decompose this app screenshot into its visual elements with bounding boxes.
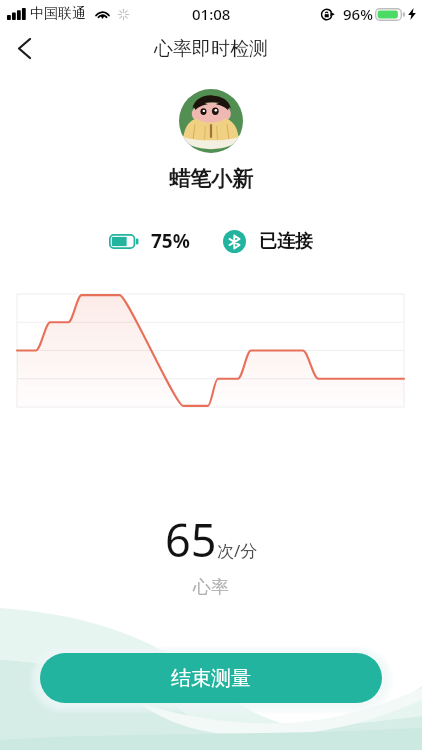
staticText: 蜡笔小新 [0, 166, 422, 192]
staticText: 65 [165, 509, 217, 570]
staticText: 01:08 [192, 4, 231, 24]
staticText: 心率即时检测 [154, 37, 268, 61]
staticText: 75% [151, 228, 190, 254]
staticText: 中国联通 [30, 5, 86, 23]
button[interactable]: 结束测量 [40, 653, 382, 703]
staticText: 结束测量 [171, 666, 251, 691]
staticText: 96% [343, 4, 373, 24]
staticText: 已连接 [259, 230, 313, 253]
staticText: 心率 [193, 576, 229, 599]
staticText: 次/分 [217, 539, 258, 562]
button[interactable]: Back [0, 28, 48, 69]
